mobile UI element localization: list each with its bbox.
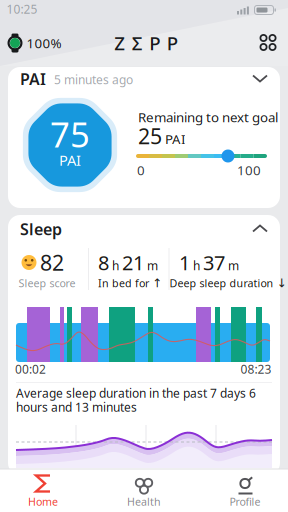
staticText: 82 [40, 248, 64, 277]
button[interactable]: Workouts [255, 29, 281, 55]
staticText: Average sleep duration in the past 7 day… [16, 385, 256, 401]
staticText: 08:23 [240, 361, 271, 377]
staticText: Sleep score [18, 276, 75, 290]
staticText: hours and 13 minutes [16, 399, 137, 415]
staticText: ZΣPP [114, 31, 178, 55]
staticText: 1 h 37 m [179, 249, 239, 276]
staticText: Health [127, 494, 161, 509]
button[interactable]: Sleep [8, 215, 280, 475]
staticText: 10:25 [6, 1, 37, 17]
staticText: PAI [59, 150, 81, 170]
staticText: Deep sleep duration ↓ [169, 276, 286, 290]
staticText: 00:02 [15, 361, 46, 377]
staticText: Home [28, 494, 58, 509]
staticText: 8 h 21 m [98, 249, 158, 276]
staticText: PAI [20, 68, 46, 90]
button[interactable]: Home [3, 470, 83, 510]
staticText: 100% [26, 34, 61, 52]
staticText: Profile [229, 494, 260, 509]
staticText: 0 [137, 161, 145, 179]
staticText: Remaining to next goal [138, 108, 278, 126]
staticText: 5 minutes ago [54, 71, 133, 87]
staticText: Sleep [20, 218, 62, 240]
staticText: 75 [50, 111, 90, 157]
button[interactable]: PAI [8, 67, 280, 208]
button[interactable]: Watch battery 100% [6, 30, 58, 56]
button[interactable]: Health [104, 470, 184, 510]
button[interactable]: Profile [205, 470, 285, 510]
staticText: 100 [237, 161, 261, 179]
staticText: In bed for ↑ [98, 276, 162, 290]
staticText: 25 PAI [138, 122, 186, 150]
